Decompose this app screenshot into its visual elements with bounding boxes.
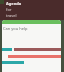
staticText: travel — [6, 13, 17, 18]
staticText: Agenda — [6, 1, 22, 6]
staticText: for — [6, 7, 12, 12]
staticText: Can you help — [3, 26, 28, 31]
